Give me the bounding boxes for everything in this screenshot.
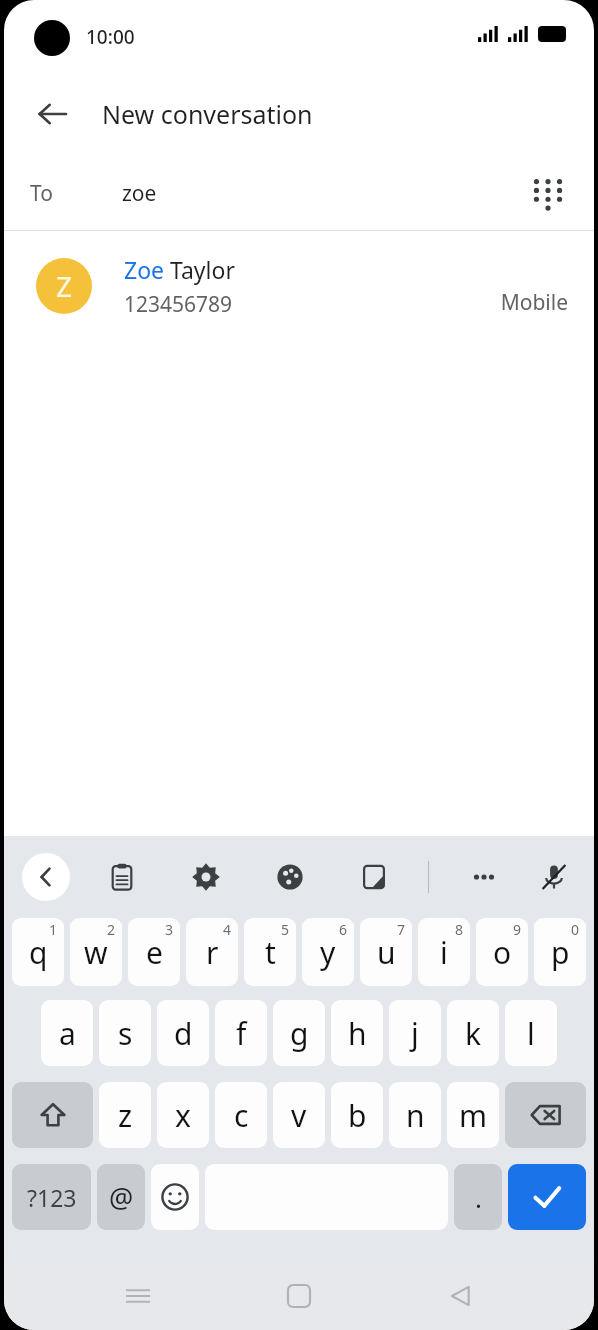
- button[interactable]: m: [447, 1082, 499, 1148]
- staticText: ?123: [27, 1182, 77, 1213]
- staticText: g: [290, 1013, 309, 1054]
- staticText: d: [174, 1013, 193, 1054]
- staticText: u: [377, 932, 396, 973]
- staticText: 0: [571, 920, 580, 939]
- staticText: 10:00: [86, 24, 135, 50]
- staticText: z: [118, 1095, 133, 1136]
- button[interactable]: v: [273, 1082, 325, 1148]
- staticText: 123456789: [124, 290, 233, 319]
- button[interactable]: x: [157, 1082, 209, 1148]
- staticText: New conversation: [102, 97, 313, 131]
- staticText: a: [59, 1013, 76, 1054]
- staticText: l: [527, 1013, 535, 1054]
- button[interactable]: Backspace: [505, 1082, 586, 1148]
- staticText: e: [146, 932, 163, 973]
- staticText: s: [118, 1013, 133, 1054]
- staticText: 2: [107, 920, 116, 939]
- staticText: i: [440, 932, 448, 973]
- staticText: Zoe Taylor: [124, 254, 235, 285]
- button[interactable]: z: [99, 1082, 151, 1148]
- button[interactable]: Shift: [12, 1082, 93, 1148]
- staticText: zoe: [122, 179, 157, 208]
- staticText: To: [30, 179, 53, 208]
- staticText: r: [206, 932, 219, 973]
- button[interactable]: l: [505, 1000, 557, 1066]
- staticText: b: [348, 1095, 367, 1136]
- button[interactable]: Emoji: [151, 1164, 199, 1230]
- button[interactable]: Back: [28, 90, 76, 138]
- staticText: y: [320, 932, 336, 973]
- button[interactable]: @: [97, 1164, 145, 1230]
- staticText: f: [236, 1013, 247, 1054]
- button[interactable]: w: [70, 918, 122, 986]
- button[interactable]: p: [534, 918, 586, 986]
- button[interactable]: b: [331, 1082, 383, 1148]
- button[interactable]: s: [99, 1000, 151, 1066]
- staticText: x: [175, 1095, 191, 1136]
- button[interactable]: Z: [4, 231, 594, 341]
- staticText: 4: [223, 920, 232, 939]
- staticText: o: [493, 932, 512, 973]
- staticText: Mobile: [4, 288, 568, 317]
- button[interactable]: Home: [271, 1268, 327, 1324]
- button[interactable]: Dialpad: [524, 169, 572, 217]
- button[interactable]: e: [128, 918, 180, 986]
- staticText: 8: [455, 920, 464, 939]
- button[interactable]: g: [273, 1000, 325, 1066]
- staticText: 7: [397, 920, 406, 939]
- staticText: 9: [513, 920, 522, 939]
- button[interactable]: Send: [508, 1164, 586, 1230]
- button[interactable]: o: [476, 918, 528, 986]
- button[interactable]: Clipboard: [98, 853, 146, 901]
- staticText: w: [84, 932, 108, 973]
- staticText: 3: [165, 920, 174, 939]
- button[interactable]: i: [418, 918, 470, 986]
- button[interactable]: More options: [460, 853, 508, 901]
- button[interactable]: u: [360, 918, 412, 986]
- staticText: .: [475, 1180, 482, 1215]
- button[interactable]: k: [447, 1000, 499, 1066]
- button[interactable]: f: [215, 1000, 267, 1066]
- staticText: c: [234, 1095, 249, 1136]
- button[interactable]: Collapse toolbar: [22, 853, 70, 901]
- staticText: v: [291, 1095, 307, 1136]
- button[interactable]: Resize keyboard: [350, 853, 398, 901]
- staticText: k: [465, 1013, 482, 1054]
- button[interactable]: q: [12, 918, 64, 986]
- staticText: t: [265, 932, 276, 973]
- button[interactable]: r: [186, 918, 238, 986]
- button[interactable]: Recent apps: [110, 1268, 166, 1324]
- button[interactable]: y: [302, 918, 354, 986]
- button[interactable]: ?123: [12, 1164, 91, 1230]
- staticText: q: [29, 932, 48, 973]
- button[interactable]: c: [215, 1082, 267, 1148]
- staticText: @: [109, 1179, 134, 1216]
- staticText: h: [348, 1013, 367, 1054]
- staticText: j: [411, 1013, 419, 1054]
- button[interactable]: .: [454, 1164, 502, 1230]
- staticText: 6: [339, 920, 348, 939]
- button[interactable]: Theme: [266, 853, 314, 901]
- button[interactable]: Settings: [182, 853, 230, 901]
- button[interactable]: j: [389, 1000, 441, 1066]
- staticText: m: [459, 1095, 488, 1136]
- staticText: p: [551, 932, 570, 973]
- button[interactable]: n: [389, 1082, 441, 1148]
- button[interactable]: d: [157, 1000, 209, 1066]
- button[interactable]: Back: [433, 1268, 489, 1324]
- button[interactable]: a: [41, 1000, 93, 1066]
- button[interactable]: h: [331, 1000, 383, 1066]
- staticText: 1: [49, 920, 58, 939]
- staticText: Z: [56, 267, 73, 305]
- staticText: n: [406, 1095, 425, 1136]
- staticText: 5: [281, 920, 290, 939]
- button[interactable]: t: [244, 918, 296, 986]
- button[interactable]: Voice input off: [530, 853, 578, 901]
